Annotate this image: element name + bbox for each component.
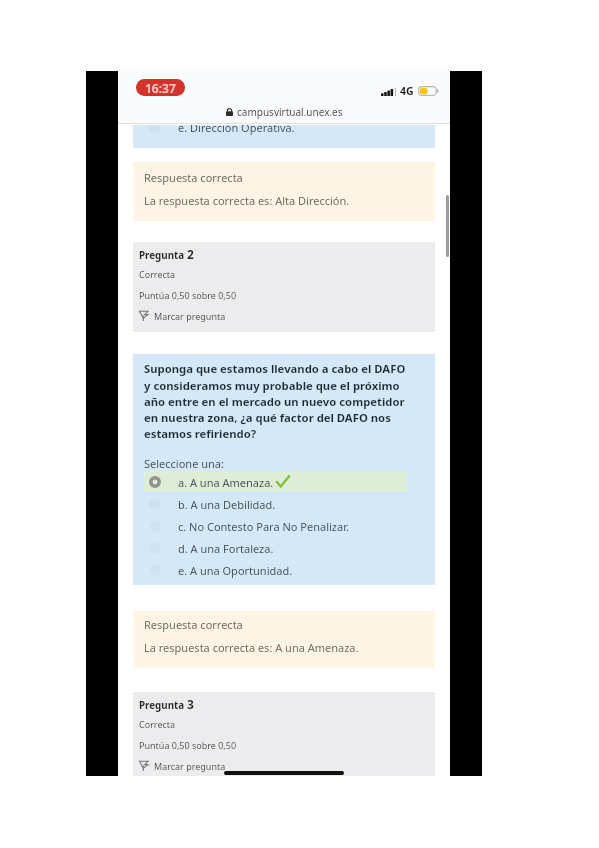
- button[interactable]: c. No Contesto Para No Penalizar.: [133, 515, 435, 536]
- staticText: La respuesta correcta es: A una Amenaza.: [144, 640, 359, 655]
- staticText: Correcta: [139, 718, 176, 730]
- staticText: 4G: [400, 84, 414, 98]
- button[interactable]: campusvirtual.unex.es: [118, 104, 450, 120]
- staticText: 2: [187, 246, 194, 262]
- staticText: Correcta: [139, 268, 176, 280]
- staticText: campusvirtual.unex.es: [237, 105, 343, 119]
- staticText: Respuesta correcta: [144, 617, 243, 632]
- button[interactable]: Marcar pregunta: [139, 760, 226, 772]
- staticText: Suponga que estamos llevando a cabo el D…: [144, 361, 412, 441]
- button[interactable]: Pregunta: [133, 242, 435, 332]
- button[interactable]: Marcar pregunta: [139, 310, 226, 322]
- staticText: e. A una Oportunidad.: [178, 563, 293, 578]
- staticText: Marcar pregunta: [154, 310, 226, 322]
- button[interactable]: Pregunta: [133, 692, 435, 776]
- staticText: Pregunta: [139, 699, 187, 712]
- staticText: c. No Contesto Para No Penalizar.: [178, 519, 349, 534]
- button[interactable]: e. Dirección Operativa.: [133, 125, 435, 148]
- button[interactable]: e. A una Oportunidad.: [133, 559, 435, 580]
- staticText: Puntúa 0,50 sobre 0,50: [139, 289, 237, 301]
- staticText: Seleccione una:: [144, 456, 224, 471]
- staticText: Puntúa 0,50 sobre 0,50: [139, 739, 237, 751]
- staticText: Marcar pregunta: [154, 760, 226, 772]
- staticText: a. A una Amenaza.: [178, 475, 274, 490]
- staticText: d. A una Fortaleza.: [178, 541, 274, 556]
- button[interactable]: b. A una Debilidad.: [133, 493, 435, 514]
- button[interactable]: Recording indicator 16:37: [136, 79, 185, 96]
- staticText: 16:37: [145, 80, 176, 96]
- staticText: Pregunta: [139, 249, 187, 262]
- button[interactable]: a. A una Amenaza.: [133, 471, 435, 492]
- staticText: b. A una Debilidad.: [178, 497, 276, 512]
- staticText: La respuesta correcta es: Alta Dirección…: [144, 193, 350, 208]
- staticText: e. Dirección Operativa.: [178, 125, 295, 135]
- button[interactable]: d. A una Fortaleza.: [133, 537, 435, 558]
- staticText: 3: [187, 696, 194, 712]
- staticText: Respuesta correcta: [144, 170, 243, 185]
